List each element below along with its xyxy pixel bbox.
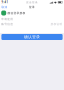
staticText: 授权说明: [51, 22, 63, 26]
staticText: 安全登录: [26, 1, 38, 4]
staticText: 账号信息: [1, 22, 13, 26]
staticText: 申请使用: [1, 17, 13, 21]
staticText: 微信登录授权: [7, 11, 25, 15]
staticText: 登录: [29, 5, 35, 9]
staticText: 9:41: [1, 0, 8, 4]
staticText: 确认登录: [24, 34, 40, 39]
button[interactable]: 确认登录: [1, 34, 63, 40]
staticText: 取消: [1, 5, 7, 9]
button[interactable]: 取消: [0, 5, 8, 9]
